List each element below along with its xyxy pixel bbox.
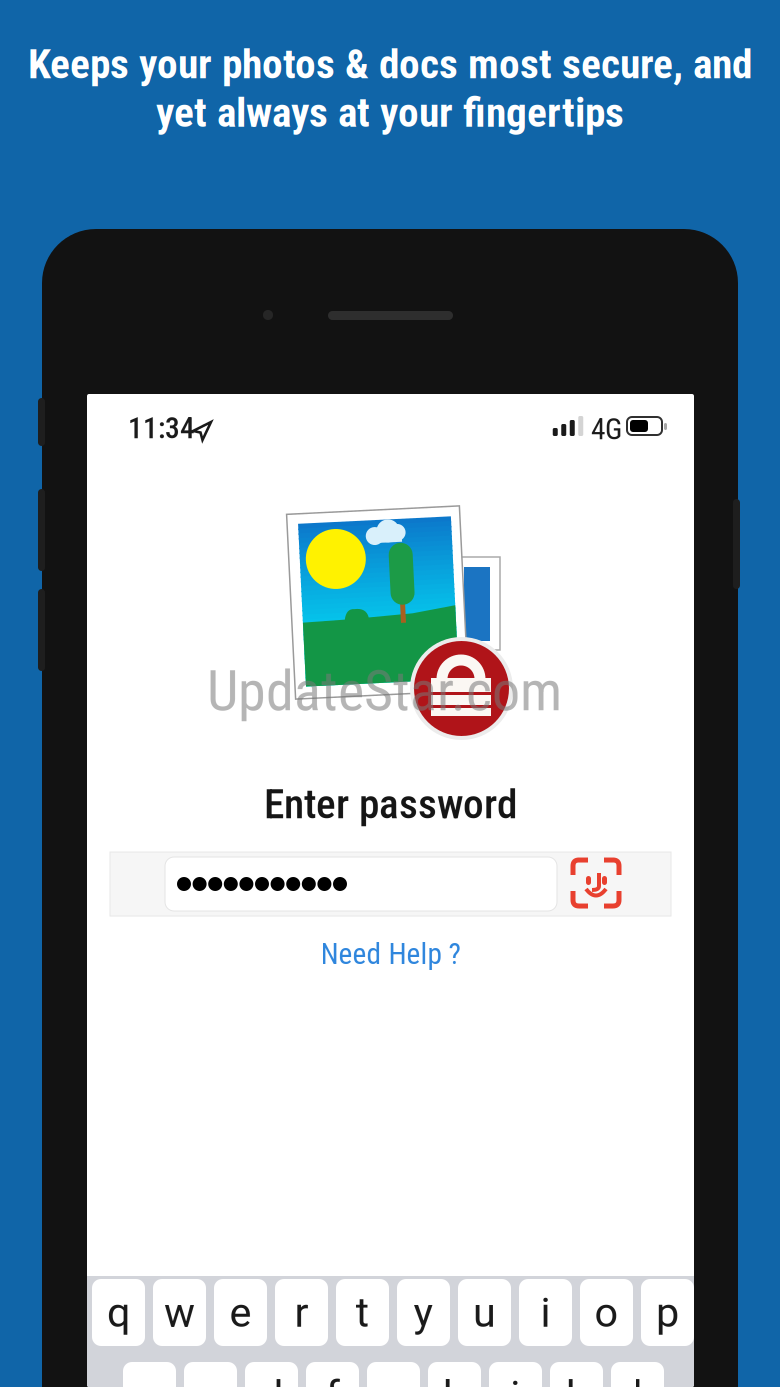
staticText: e xyxy=(229,1288,251,1337)
staticText: w xyxy=(164,1288,195,1337)
button[interactable]: e xyxy=(214,1279,267,1346)
button[interactable]: u xyxy=(458,1279,511,1346)
button[interactable]: k xyxy=(550,1362,603,1387)
staticText: d xyxy=(260,1371,283,1387)
button[interactable]: j xyxy=(489,1362,542,1387)
button[interactable]: i xyxy=(519,1279,572,1346)
staticText: h xyxy=(443,1371,466,1387)
staticText: 11:34 xyxy=(128,411,195,445)
staticText: i xyxy=(540,1288,550,1337)
staticText: f xyxy=(325,1371,339,1387)
button[interactable]: h xyxy=(428,1362,481,1387)
staticText: j xyxy=(510,1371,520,1387)
button[interactable]: Need Help ? xyxy=(290,932,490,976)
staticText: p xyxy=(656,1288,679,1337)
button[interactable]: w xyxy=(153,1279,206,1346)
staticText: r xyxy=(294,1288,308,1337)
button[interactable]: t xyxy=(336,1279,389,1346)
button[interactable]: r xyxy=(275,1279,328,1346)
staticText: k xyxy=(566,1371,587,1387)
button[interactable] xyxy=(110,852,671,916)
staticText: y xyxy=(413,1288,433,1337)
button[interactable]: y xyxy=(397,1279,450,1346)
button[interactable]: a xyxy=(123,1362,176,1387)
staticText: UpdateStar.com xyxy=(207,658,562,724)
staticText: o xyxy=(594,1288,618,1337)
staticText: t xyxy=(355,1288,369,1337)
staticText: yet always at your fingertips xyxy=(156,88,624,137)
staticText: Keeps your photos & docs most secure, an… xyxy=(28,40,752,88)
button[interactable]: l xyxy=(611,1362,664,1387)
staticText: Enter password xyxy=(264,780,517,828)
staticText: l xyxy=(632,1371,642,1387)
button[interactable]: g xyxy=(367,1362,420,1387)
staticText: u xyxy=(473,1288,496,1337)
button[interactable]: d xyxy=(245,1362,298,1387)
button[interactable]: f xyxy=(306,1362,359,1387)
staticText: Need Help ? xyxy=(320,937,460,971)
button[interactable]: p xyxy=(641,1279,694,1346)
staticText: q xyxy=(107,1288,130,1337)
staticText: 4G xyxy=(591,412,622,446)
button[interactable]: s xyxy=(184,1362,237,1387)
button[interactable]: o xyxy=(580,1279,633,1346)
button[interactable]: q xyxy=(92,1279,145,1346)
